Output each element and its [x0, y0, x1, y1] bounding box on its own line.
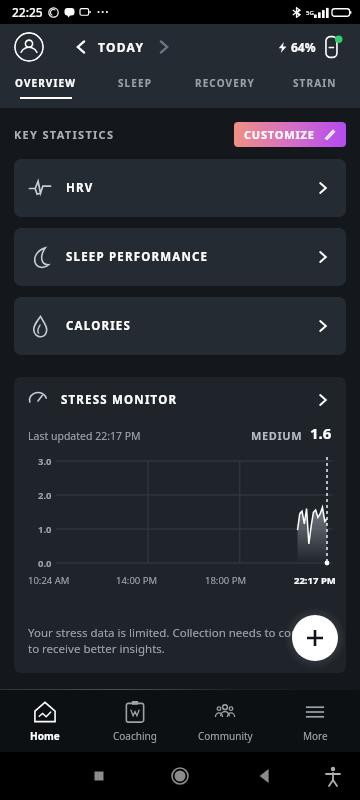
button[interactable]: OVERVIEW	[0, 70, 90, 108]
staticText: 3.0	[38, 455, 52, 468]
staticText: HRV	[66, 180, 94, 196]
button[interactable]: Previous day	[70, 36, 92, 58]
staticText: TODAY	[98, 39, 145, 55]
staticText: 1.6	[310, 423, 332, 443]
button[interactable]: 64%	[275, 34, 346, 60]
button[interactable]: Add	[292, 615, 338, 661]
staticText: 0.0	[38, 557, 52, 570]
staticText: SLEEP PERFORMANCE	[66, 249, 209, 265]
staticText: 1.0	[38, 523, 52, 536]
button[interactable]: Next day	[153, 36, 175, 58]
button[interactable]: More	[270, 690, 360, 752]
button[interactable]: CALORIES	[14, 297, 346, 355]
staticText: CALORIES	[66, 318, 132, 334]
staticText: 18:00 PM	[205, 574, 247, 587]
staticText: CUSTOMIZE	[244, 127, 315, 142]
staticText: STRAIN	[293, 76, 337, 90]
staticText: 22:17 PM	[294, 574, 336, 587]
staticText: Your stress data is limited. Collection …	[28, 625, 332, 657]
staticText: KEY STATISTICS	[14, 127, 115, 142]
button[interactable]: Coaching	[90, 690, 180, 752]
staticText: STRESS MONITOR	[61, 392, 178, 408]
staticText: 14:00 PM	[116, 574, 158, 587]
staticText: More	[303, 729, 328, 743]
staticText: Home	[30, 729, 60, 743]
staticText: Last updated 22:17 PM	[28, 429, 141, 443]
button[interactable]: STRESS MONITOR	[14, 377, 346, 673]
button[interactable]: RECOVERY	[180, 70, 270, 108]
staticText: 10:24 AM	[28, 574, 70, 587]
button[interactable]: STRAIN	[270, 70, 360, 108]
button[interactable]: CUSTOMIZE	[234, 122, 346, 147]
button[interactable]: Home	[0, 690, 90, 752]
button[interactable]: SLEEP	[90, 70, 180, 108]
staticText: Community	[198, 729, 253, 743]
staticText: RECOVERY	[195, 76, 255, 90]
staticText: 2.0	[38, 489, 52, 502]
staticText: 22:25	[12, 4, 43, 20]
button[interactable]: Community	[180, 690, 270, 752]
staticText: 64%	[291, 39, 316, 55]
staticText: MEDIUM	[251, 428, 303, 443]
button[interactable]: Profile	[14, 32, 44, 62]
staticText: Coaching	[113, 729, 157, 743]
button[interactable]: SLEEP PERFORMANCE	[14, 228, 346, 286]
staticText: OVERVIEW	[15, 76, 76, 90]
staticText: SLEEP	[118, 76, 153, 90]
staticText: 5G	[306, 9, 314, 17]
button[interactable]: HRV	[14, 159, 346, 217]
